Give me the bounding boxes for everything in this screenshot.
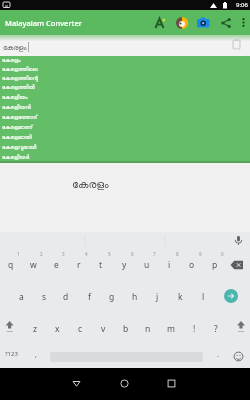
button[interactable] [112,371,136,395]
button[interactable]: n [137,318,159,340]
button[interactable]: കേരളീയൻ [2,103,250,113]
button[interactable]: കേരളത്തിൽ [2,83,250,93]
button[interactable] [218,15,233,30]
staticText: p [212,259,218,271]
staticText: ? [214,323,218,335]
button[interactable] [229,37,244,52]
staticText: o [189,259,195,271]
staticText: 2 [40,251,43,257]
button[interactable]: കേരളമായി [2,133,250,143]
button[interactable]: k [169,286,191,308]
button[interactable]: u [136,254,158,276]
staticText: 9 [199,251,202,257]
staticText: q [8,259,14,271]
staticText: k [178,291,183,303]
staticText: കേരളത്തിലെ [2,67,38,73]
staticText: ?123 [5,350,18,358]
button[interactable]: ?123 [2,347,21,360]
button[interactable]: m [160,318,182,340]
button[interactable]: കേരളവുമായി [2,143,250,153]
button[interactable] [195,14,212,31]
button[interactable]: കേരളീയർ [2,153,250,163]
button[interactable] [224,289,238,303]
button[interactable]: z [24,318,46,340]
button[interactable]: f [78,286,100,308]
staticText: y [122,259,127,271]
button[interactable]: e [45,254,67,276]
staticText: m [167,323,175,335]
staticText: r [77,259,81,271]
button[interactable]: c [69,318,91,340]
staticText: i [168,259,171,271]
staticText: s [42,291,47,303]
button[interactable] [159,371,183,395]
button[interactable]: i [158,254,180,276]
button[interactable]: , [25,344,47,366]
button[interactable] [230,316,250,336]
staticText: കേരളീയർ [2,155,30,161]
staticText: j [156,291,159,303]
staticText: 8 [176,251,179,257]
staticText: 9:06 [236,1,248,9]
button[interactable] [173,14,190,31]
button[interactable]: ? [205,318,227,340]
button[interactable]: കേരളമാണ് [2,123,250,133]
button[interactable]: p [204,254,226,276]
button[interactable]: a [10,286,32,308]
staticText: w [30,259,37,271]
staticText: t [99,259,103,271]
button[interactable]: d [55,286,77,308]
staticText: 5 [108,251,111,257]
button[interactable]: q [0,254,22,276]
button[interactable]: കേരളത്തിന്റെ [2,74,250,83]
staticText: x [55,323,60,335]
button[interactable]: o [181,254,203,276]
staticText: . [217,350,219,360]
button[interactable]: y [113,254,135,276]
button[interactable]: കേരളത്തോട് [2,113,250,123]
staticText: 4 [85,251,88,257]
staticText: ! [193,323,196,335]
button[interactable] [228,232,248,249]
button[interactable]: s [33,286,55,308]
staticText: 3 [62,251,65,257]
staticText: 0 [221,251,224,257]
staticText: l [202,291,205,303]
staticText: കേരളം [2,58,21,64]
staticText: u [144,259,150,271]
staticText: 7 [153,251,156,257]
button[interactable]: v [92,318,114,340]
button[interactable]: x [46,318,68,340]
button[interactable] [238,17,249,28]
staticText: 6 [131,251,134,257]
button[interactable] [64,371,88,395]
button[interactable]: g [101,286,123,308]
button[interactable] [228,346,249,366]
staticText: കേരളത്തോട് [2,115,37,121]
staticText: കേരളമായി [2,135,32,141]
staticText: a [19,291,24,303]
staticText: കേരളത്തിൽ [2,85,35,91]
staticText: , [35,350,37,360]
button[interactable]: . [207,344,229,366]
button[interactable] [226,255,248,275]
button[interactable]: കേരളത്തിലെ [2,65,250,74]
staticText: കേരളം [3,44,27,51]
staticText: c [78,323,83,335]
button[interactable] [151,14,168,31]
button[interactable]: കേരളം [2,56,250,65]
button[interactable]: t [90,254,112,276]
staticText: Malayalam Converter [5,18,82,28]
button[interactable]: l [192,286,214,308]
button[interactable]: j [146,286,168,308]
staticText: n [145,323,151,335]
button[interactable]: h [124,286,146,308]
button[interactable]: b [115,318,137,340]
button[interactable] [0,316,20,336]
button[interactable]: w [22,254,44,276]
button[interactable]: ! [183,318,205,340]
staticText: z [33,323,37,335]
button[interactable]: r [68,254,90,276]
button[interactable]: കേരളീയം [2,93,250,103]
